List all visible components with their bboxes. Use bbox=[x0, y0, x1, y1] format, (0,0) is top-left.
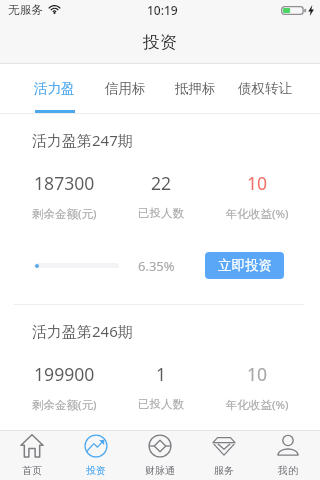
button[interactable]: 抵押标 bbox=[160, 64, 230, 114]
staticText: 立即投资 bbox=[218, 257, 272, 274]
staticText: 无服务 bbox=[8, 3, 44, 18]
button[interactable]: 财脉通 bbox=[128, 430, 192, 480]
staticText: 187300 bbox=[34, 171, 95, 195]
staticText: 10:19 bbox=[147, 2, 178, 18]
staticText: 活力盈第246期 bbox=[32, 321, 133, 341]
staticText: 已投人数 bbox=[138, 206, 184, 220]
staticText: 首页 bbox=[22, 464, 42, 477]
staticText: 剩余金额(元) bbox=[32, 206, 97, 222]
staticText: 10 bbox=[247, 362, 268, 386]
staticText: 199900 bbox=[34, 362, 95, 386]
staticText: 1 bbox=[156, 362, 167, 386]
staticText: 抵押标 bbox=[175, 80, 216, 97]
button[interactable]: 债权转让 bbox=[230, 64, 300, 114]
button[interactable]: 首页 bbox=[0, 430, 64, 480]
staticText: 剩余金额(元) bbox=[32, 397, 97, 413]
button[interactable]: 活力盈第246期 bbox=[0, 305, 320, 413]
button[interactable]: 信用标 bbox=[90, 64, 160, 114]
button[interactable]: 立即投资 bbox=[205, 252, 284, 279]
staticText: 年化收益(%) bbox=[226, 206, 289, 222]
button[interactable]: 活力盈 bbox=[19, 64, 90, 114]
staticText: 投资 bbox=[86, 464, 106, 477]
staticText: 6.35% bbox=[138, 257, 175, 275]
staticText: 财脉通 bbox=[145, 464, 175, 477]
staticText: 10 bbox=[247, 171, 268, 195]
staticText: 已投人数 bbox=[138, 397, 184, 411]
button[interactable]: 投资 bbox=[64, 430, 128, 480]
staticText: 我的 bbox=[278, 464, 298, 477]
staticText: 债权转让 bbox=[238, 80, 292, 97]
button[interactable]: 服务 bbox=[192, 430, 256, 480]
button[interactable]: 活力盈第247期 bbox=[0, 114, 320, 304]
staticText: 活力盈 bbox=[34, 80, 75, 97]
staticText: 年化收益(%) bbox=[226, 397, 289, 413]
button[interactable]: 我的 bbox=[256, 430, 320, 480]
staticText: 信用标 bbox=[105, 80, 146, 97]
staticText: 22 bbox=[151, 171, 172, 195]
staticText: 活力盈第247期 bbox=[32, 130, 133, 150]
staticText: 投资 bbox=[143, 32, 177, 53]
staticText: 服务 bbox=[214, 464, 234, 477]
